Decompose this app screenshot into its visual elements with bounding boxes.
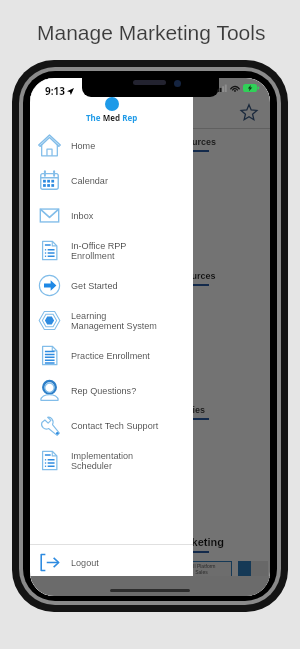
staticText: Implementation Scheduler — [71, 451, 134, 471]
button[interactable]: Full Platform Sales — [170, 561, 232, 577]
button[interactable]: Home — [30, 128, 193, 163]
staticText: Manage Marketing Tools — [37, 21, 266, 44]
button[interactable]: Implementation Scheduler — [30, 443, 193, 478]
button[interactable]: Practice Enrollment — [30, 338, 193, 373]
staticText: Full Platform Sales — [187, 563, 216, 575]
button[interactable]: Contact Tech Support — [30, 408, 193, 443]
staticText: Home — [71, 141, 96, 151]
button[interactable]: Logout — [30, 545, 193, 580]
button[interactable] — [238, 561, 268, 577]
button[interactable]: Favorite — [240, 104, 258, 122]
staticText: Calendar — [71, 176, 108, 186]
staticText: Rep Questions? — [71, 386, 137, 396]
staticText: Contact Tech Support — [71, 421, 159, 431]
staticText: Inbox — [71, 211, 94, 221]
button[interactable]: Rep Questions? — [30, 373, 193, 408]
staticText: Practice Enrollment — [71, 351, 150, 361]
button[interactable]: Inbox — [30, 198, 193, 233]
staticText: Get Started — [71, 281, 118, 291]
button[interactable]: Calendar — [30, 163, 193, 198]
staticText: Rep Utilities — [153, 405, 206, 415]
button[interactable]: Learning Management System — [30, 303, 193, 338]
staticText: In-Office RPP Enrollment — [71, 241, 127, 261]
staticText: Rep Resources — [150, 271, 216, 281]
staticText: Marketing — [172, 536, 224, 548]
button[interactable]: Get Started — [30, 268, 193, 303]
staticText: Sales Resources — [144, 137, 217, 147]
staticText: Logout — [71, 558, 99, 568]
button[interactable]: In-Office RPP Enrollment — [30, 233, 193, 268]
staticText: The Med Rep — [86, 112, 138, 123]
staticText: Learning Management System — [71, 311, 157, 331]
staticText: 9:13 — [45, 84, 65, 98]
